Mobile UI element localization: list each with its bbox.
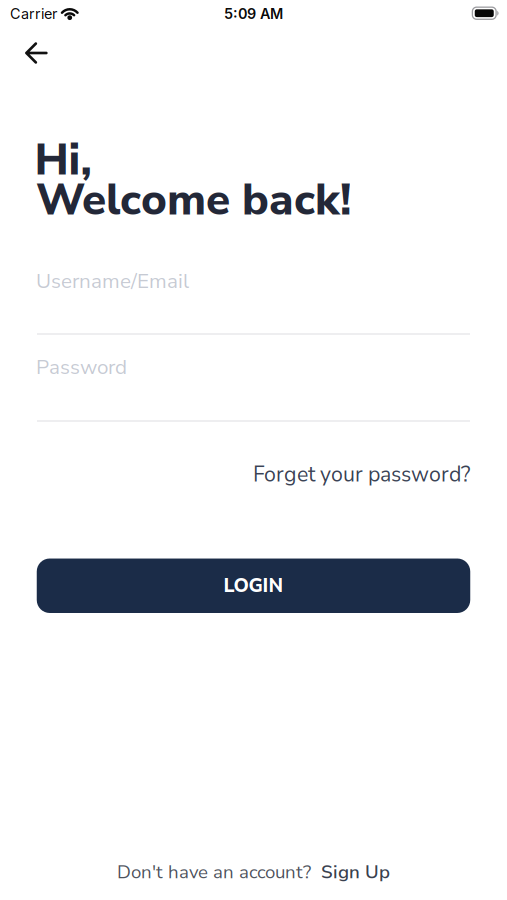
staticText: Welcome back! — [36, 170, 351, 230]
button[interactable]: LOGIN — [37, 558, 470, 613]
staticText: Forget your password? — [253, 460, 470, 489]
staticText: Username/Email — [36, 267, 189, 295]
button[interactable]: Username/Email — [0, 267, 507, 295]
button[interactable]: Password — [0, 353, 507, 381]
button[interactable]: Back — [15, 32, 57, 74]
staticText: Don't have an account? — [117, 859, 311, 885]
staticText: 5:09 AM — [224, 5, 283, 22]
staticText: Sign Up — [321, 859, 390, 885]
staticText: LOGIN — [223, 573, 283, 599]
staticText: Hi, — [34, 130, 91, 190]
staticText: Carrier — [10, 5, 57, 22]
button[interactable]: Sign Up — [321, 859, 390, 885]
staticText: Password — [36, 353, 127, 381]
button[interactable]: Forget your password? — [253, 460, 470, 489]
